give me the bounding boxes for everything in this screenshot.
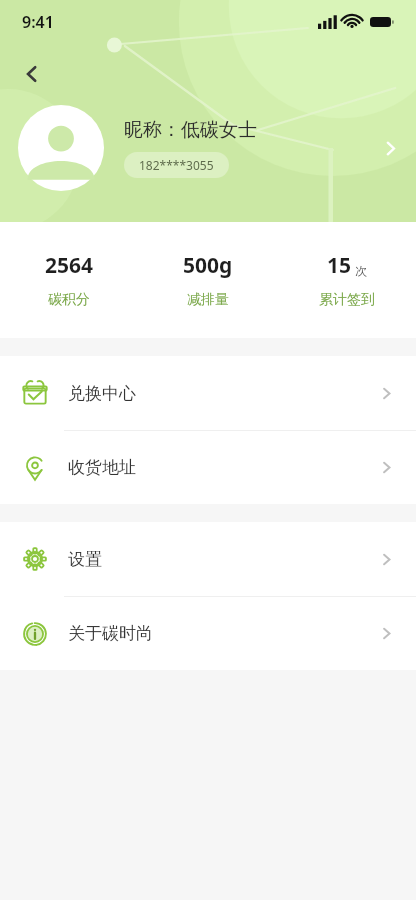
- staticText: 2564: [45, 251, 94, 280]
- button[interactable]: 15: [277, 222, 416, 338]
- staticText: 15: [327, 251, 352, 280]
- staticText: 收货地址: [68, 457, 136, 478]
- button[interactable]: Back: [10, 52, 54, 96]
- button[interactable]: 设置: [0, 522, 416, 596]
- button[interactable]: 500g: [138, 222, 277, 338]
- staticText: 碳积分: [48, 291, 90, 309]
- staticText: 182****3055: [139, 157, 214, 173]
- staticText: 关于碳时尚: [68, 623, 153, 644]
- staticText: 昵称：低碳女士: [124, 118, 257, 142]
- button[interactable]: 关于碳时尚: [0, 597, 416, 670]
- button[interactable]: 昵称：低碳女士: [0, 98, 416, 198]
- button[interactable]: 收货地址: [0, 431, 416, 504]
- staticText: 减排量: [187, 291, 229, 309]
- staticText: 累计签到: [319, 291, 375, 309]
- staticText: 500g: [183, 251, 233, 280]
- staticText: 兑换中心: [68, 383, 136, 404]
- staticText: 设置: [68, 549, 102, 570]
- button[interactable]: 兑换中心: [0, 356, 416, 430]
- button[interactable]: 2564: [0, 222, 138, 338]
- staticText: 9:41: [22, 11, 54, 33]
- staticText: 次: [355, 263, 367, 278]
